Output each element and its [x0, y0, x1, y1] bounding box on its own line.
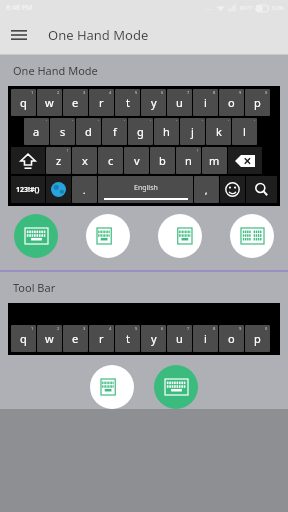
staticText: 1: [31, 326, 34, 331]
staticText: q: [20, 331, 27, 346]
staticText: 9: [239, 90, 242, 95]
button[interactable]: b: [150, 147, 175, 174]
button[interactable]: ': [128, 118, 153, 145]
staticText: w: [45, 331, 54, 346]
staticText: i: [204, 95, 207, 110]
button[interactable]: x: [72, 147, 97, 174]
button[interactable]: 3: [63, 89, 88, 116]
button[interactable]: 6: [141, 325, 166, 352]
staticText: 6: [161, 326, 164, 331]
staticText: ': [124, 119, 125, 124]
staticText: ': [72, 119, 73, 124]
button[interactable]: !: [176, 147, 201, 174]
button[interactable]: 1: [11, 325, 36, 352]
button[interactable]: ': [24, 118, 49, 145]
staticText: MPT: [240, 4, 253, 12]
button[interactable]: 2: [37, 325, 62, 352]
button[interactable]: Search: [246, 176, 277, 203]
staticText: 123!#(): [16, 185, 40, 195]
staticText: p: [254, 95, 261, 110]
button[interactable]: 0: [245, 89, 270, 116]
staticText: .: [83, 184, 86, 196]
staticText: 3: [83, 90, 86, 95]
staticText: 2: [57, 326, 60, 331]
staticText: b: [159, 153, 166, 168]
button[interactable]: ': [180, 118, 205, 145]
button[interactable]: Change language: [46, 176, 71, 203]
button[interactable]: Shift: [11, 147, 45, 174]
staticText: r: [99, 95, 104, 110]
button[interactable]: 8: [193, 89, 218, 116]
button[interactable]: c: [98, 147, 123, 174]
staticText: ': [176, 119, 177, 124]
button[interactable]: 5: [115, 325, 140, 352]
button[interactable]: Right one hand keyboard: [158, 214, 202, 258]
staticText: d: [85, 124, 92, 139]
staticText: ': [228, 119, 229, 124]
staticText: l: [243, 124, 246, 139]
button[interactable]: ': [154, 118, 179, 145]
staticText: 0: [265, 326, 268, 331]
button[interactable]: Backspace: [228, 147, 262, 174]
staticText: ': [150, 119, 151, 124]
staticText: 6: [161, 90, 164, 95]
button[interactable]: ': [76, 118, 101, 145]
staticText: o: [228, 95, 235, 110]
staticText: 62%: [272, 4, 284, 12]
staticText: ': [46, 119, 47, 124]
staticText: 2: [57, 90, 60, 95]
button[interactable]: Emoji: [220, 176, 245, 203]
button[interactable]: 1: [11, 89, 36, 116]
staticText: ': [202, 119, 203, 124]
button[interactable]: ': [232, 118, 257, 145]
button[interactable]: m: [202, 147, 227, 174]
button[interactable]: ': [206, 118, 231, 145]
staticText: ,: [205, 184, 208, 196]
button[interactable]: 0: [245, 325, 270, 352]
button[interactable]: Toolbar on: [154, 365, 198, 409]
staticText: 4: [109, 326, 112, 331]
staticText: 5: [135, 326, 138, 331]
button[interactable]: ': [102, 118, 127, 145]
button[interactable]: ': [50, 118, 75, 145]
staticText: m: [209, 153, 220, 168]
staticText: s: [60, 124, 66, 139]
button[interactable]: Full keyboard: [14, 214, 58, 258]
button[interactable]: Toolbar off: [90, 365, 134, 409]
button[interactable]: 2: [37, 89, 62, 116]
button[interactable]: 3: [63, 325, 88, 352]
button[interactable]: 9: [219, 89, 244, 116]
staticText: n: [185, 153, 192, 168]
button[interactable]: 8: [193, 325, 218, 352]
button[interactable]: 9: [219, 325, 244, 352]
button[interactable]: 4: [89, 89, 114, 116]
staticText: 3: [83, 326, 86, 331]
button[interactable]: ,: [194, 176, 219, 203]
staticText: !: [197, 148, 199, 153]
staticText: !: [67, 148, 69, 153]
staticText: g: [137, 124, 144, 139]
button[interactable]: 7: [167, 89, 192, 116]
button[interactable]: Split keyboard: [230, 214, 274, 258]
button[interactable]: v: [124, 147, 149, 174]
staticText: 9: [239, 326, 242, 331]
staticText: t: [126, 95, 130, 110]
button[interactable]: 5: [115, 89, 140, 116]
staticText: r: [99, 331, 104, 346]
button[interactable]: Left one hand keyboard: [86, 214, 130, 258]
button[interactable]: !: [46, 147, 71, 174]
button[interactable]: 4: [89, 325, 114, 352]
button[interactable]: English: [98, 176, 193, 203]
staticText: y: [151, 95, 157, 110]
staticText: 0: [265, 90, 268, 95]
staticText: u: [176, 95, 183, 110]
staticText: e: [72, 95, 79, 110]
button[interactable]: .: [72, 176, 97, 203]
staticText: t: [126, 331, 130, 346]
staticText: 8: [213, 90, 216, 95]
button[interactable]: 6: [141, 89, 166, 116]
button[interactable]: 7: [167, 325, 192, 352]
button[interactable]: 123!#(): [11, 176, 45, 203]
button[interactable]: Menu: [0, 16, 38, 54]
